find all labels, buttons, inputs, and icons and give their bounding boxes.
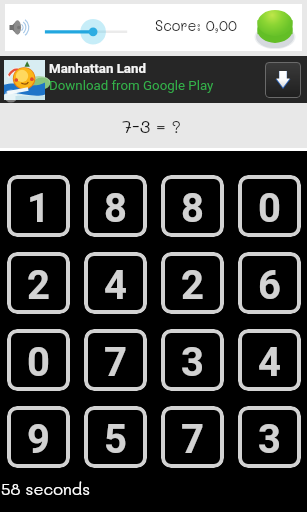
staticText: 7-3 = ?	[122, 114, 181, 137]
button[interactable]: 8	[84, 175, 147, 237]
button[interactable]: 0	[7, 329, 70, 391]
staticText: 4	[258, 339, 281, 386]
button[interactable]: Sound on	[251, 4, 294, 48]
button[interactable]: 9	[7, 406, 70, 468]
button[interactable]: Volume slider	[41, 17, 139, 47]
staticText: 9	[27, 416, 50, 463]
button[interactable]: Download	[265, 62, 301, 98]
button[interactable]: 4	[238, 329, 301, 391]
staticText: 8	[181, 185, 204, 232]
staticText: 3	[181, 339, 204, 386]
staticText: Manhattan Land	[49, 61, 146, 77]
staticText: 1	[27, 185, 50, 232]
button[interactable]: 2	[161, 252, 224, 314]
button[interactable]: Manhattan Land	[0, 56, 307, 103]
button[interactable]: 4	[84, 252, 147, 314]
staticText: Download from Google Play	[49, 78, 214, 94]
staticText: 0	[258, 185, 281, 232]
staticText: 2	[181, 262, 204, 309]
button[interactable]: 7	[84, 329, 147, 391]
button[interactable]: 3	[238, 406, 301, 468]
staticText: 58 seconds	[1, 478, 91, 499]
button[interactable]: Volume	[8, 17, 34, 39]
staticText: 0	[27, 339, 50, 386]
staticText: 5	[104, 416, 127, 463]
staticText: 8	[104, 185, 127, 232]
staticText: 3	[258, 416, 281, 463]
staticText: 7	[104, 339, 127, 386]
button[interactable]: 2	[7, 252, 70, 314]
button[interactable]: 5	[84, 406, 147, 468]
staticText: 4	[104, 262, 127, 309]
button[interactable]: 8	[161, 175, 224, 237]
button[interactable]: 7	[161, 406, 224, 468]
staticText: 2	[27, 262, 50, 309]
button[interactable]: 1	[7, 175, 70, 237]
staticText: 7	[181, 416, 204, 463]
button[interactable]: 0	[238, 175, 301, 237]
button[interactable]: 3	[161, 329, 224, 391]
button[interactable]: 6	[238, 252, 301, 314]
staticText: 6	[258, 262, 281, 309]
staticText: Score: 0,00	[155, 16, 237, 35]
